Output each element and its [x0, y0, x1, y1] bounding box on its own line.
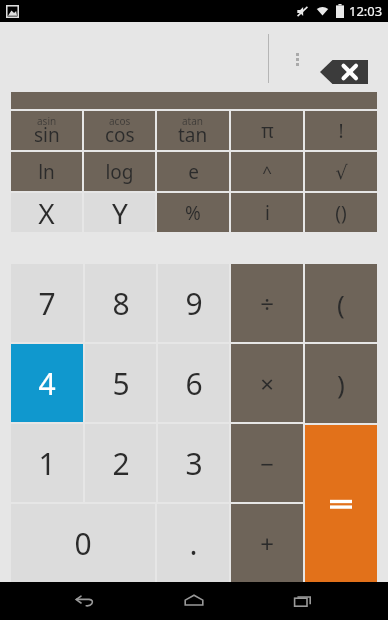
staticText: . [189, 523, 198, 564]
button[interactable]: 7 [11, 264, 83, 342]
button[interactable]: ÷ [231, 264, 303, 342]
staticText: 5 [112, 363, 130, 404]
button[interactable]: Back [61, 582, 109, 620]
button[interactable]: ln [11, 152, 82, 191]
button[interactable]: . [157, 504, 229, 582]
button[interactable]: log [84, 152, 155, 191]
button[interactable]: acos [84, 111, 155, 150]
button[interactable]: 5 [85, 344, 156, 422]
staticText: ( [337, 286, 345, 321]
button[interactable]: i [231, 193, 303, 232]
staticText: Y [112, 194, 128, 232]
staticText: log [105, 159, 134, 185]
button[interactable]: X [11, 193, 82, 232]
staticText: ln [38, 159, 55, 185]
staticText: X [38, 194, 55, 232]
staticText: × [260, 367, 274, 400]
button[interactable]: 9 [158, 264, 229, 342]
button[interactable]: ) [305, 344, 377, 423]
button[interactable]: 4 [11, 344, 83, 422]
staticText: cos [105, 122, 135, 148]
staticText: ) [337, 366, 345, 401]
staticText: 3 [185, 443, 203, 484]
button[interactable]: % [157, 193, 229, 232]
staticText: () [335, 200, 347, 226]
button[interactable]: Home [170, 582, 218, 620]
button[interactable]: 2 [85, 424, 156, 502]
staticText: sin [34, 122, 60, 148]
button[interactable]: More options [285, 47, 309, 71]
staticText: 2 [112, 443, 130, 484]
button[interactable] [305, 425, 377, 582]
button[interactable]: √ [305, 152, 377, 191]
staticText: ^ [262, 160, 272, 183]
button[interactable]: ! [305, 111, 377, 150]
button[interactable]: () [305, 193, 377, 232]
staticText: − [260, 447, 274, 480]
staticText: 6 [185, 363, 203, 404]
staticText: % [185, 200, 201, 226]
button[interactable]: ( [305, 264, 377, 342]
staticText: 9 [185, 283, 203, 324]
staticText: asin [37, 114, 57, 128]
staticText: ! [338, 118, 344, 144]
staticText: 12:03 [349, 2, 383, 20]
button[interactable]: Y [84, 193, 155, 232]
staticText: ÷ [260, 287, 274, 320]
button[interactable]: atan [157, 111, 229, 150]
button[interactable]: + [231, 504, 303, 582]
staticText: 0 [74, 523, 92, 564]
button[interactable]: − [231, 424, 303, 502]
staticText: √ [335, 161, 348, 183]
button[interactable]: π [231, 111, 303, 150]
button[interactable]: × [231, 344, 303, 422]
button[interactable]: Delete [320, 60, 368, 84]
button[interactable]: asin [11, 111, 82, 150]
button[interactable]: ^ [231, 152, 303, 191]
staticText: tan [178, 122, 208, 148]
staticText: atan [182, 114, 204, 128]
staticText: 7 [38, 283, 56, 324]
staticText: acos [109, 114, 131, 128]
button[interactable]: 6 [158, 344, 229, 422]
staticText: e [188, 159, 199, 185]
staticText: i [265, 200, 270, 226]
staticText: 4 [38, 363, 56, 404]
button[interactable]: 8 [85, 264, 156, 342]
button[interactable]: Recent apps [279, 582, 327, 620]
button[interactable]: 1 [11, 424, 83, 502]
button[interactable]: 0 [11, 504, 155, 582]
staticText: π [261, 118, 274, 144]
staticText: + [260, 527, 274, 560]
button[interactable]: 3 [158, 424, 229, 502]
staticText: 8 [112, 283, 130, 324]
button[interactable]: e [157, 152, 229, 191]
staticText: 1 [38, 443, 56, 484]
